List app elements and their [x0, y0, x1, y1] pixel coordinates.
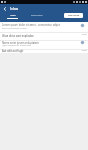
staticText: Sed ut perspiciatis unde: [2, 27, 27, 30]
button[interactable]: Navigate up: [0, 4, 9, 13]
staticText: more: [82, 49, 87, 52]
button[interactable]: Bookmarks: [29, 12, 44, 20]
button[interactable]: [0, 32, 88, 40]
staticText: Nemo enim ipsam voluptatem: [2, 41, 39, 45]
other: Share: [80, 40, 85, 45]
button[interactable]: [0, 49, 88, 53]
button[interactable]: [0, 22, 88, 32]
staticText: Notes: [10, 14, 16, 17]
staticText: Bookmarks: [31, 14, 43, 17]
staticText: ADD NOTE: [68, 14, 80, 17]
button[interactable]: Notes: [7, 12, 18, 22]
staticText: more: [82, 33, 87, 36]
button[interactable]: [0, 40, 88, 48]
staticText: Lorem ipsum dolor sit amet - consectetur…: [2, 23, 61, 27]
staticText: Inbox: [10, 7, 19, 11]
staticText: Quia voluptas sit aspernatur: [2, 44, 32, 47]
button[interactable]: ADD NOTE: [64, 13, 83, 18]
staticText: Vitae dicta sunt explicabo: [2, 34, 34, 38]
staticText: Aut odit aut fugit: [2, 49, 24, 53]
other: Share: [80, 23, 85, 28]
